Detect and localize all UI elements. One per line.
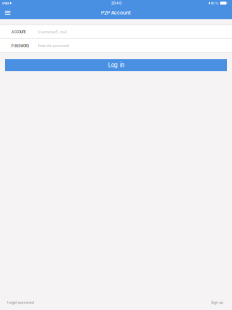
- button[interactable]: Menu: [0, 6, 16, 19]
- staticText: Log in: [108, 62, 124, 68]
- staticText: Sign up: [211, 300, 223, 304]
- button[interactable]: Forgot password: [6, 298, 35, 306]
- staticText: Enter the password: [38, 43, 69, 48]
- button[interactable]: Password:: [0, 39, 232, 52]
- staticText: 61%: [211, 1, 219, 5]
- button[interactable]: Account:: [0, 25, 232, 39]
- staticText: Password:: [11, 43, 29, 48]
- staticText: P2P Account: [101, 10, 131, 16]
- staticText: Forgot password: [7, 300, 34, 304]
- staticText: Account:: [11, 29, 26, 34]
- staticText: Username/E-mail: [38, 30, 67, 34]
- button[interactable]: Log in: [5, 59, 227, 71]
- button[interactable]: Sign up: [210, 298, 224, 306]
- staticText: 20:40: [111, 1, 121, 5]
- staticText: iPad: [2, 1, 9, 5]
